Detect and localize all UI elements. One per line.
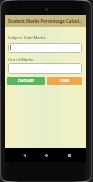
button[interactable]: Recent apps — [64, 150, 75, 161]
button[interactable]: Back — [19, 150, 30, 161]
staticText: CLEAR — [60, 79, 69, 83]
staticText: CALCULATE — [18, 79, 35, 83]
staticText: Student Marks Percentage Calcul... — [8, 18, 83, 24]
button[interactable]: Home — [41, 150, 52, 161]
button[interactable] — [8, 43, 82, 53]
button[interactable]: CLEAR — [47, 77, 82, 85]
staticText: Subject Total Marks: — [8, 35, 47, 41]
button[interactable]: CALCULATE — [7, 77, 45, 85]
staticText: Out of Marks: — [8, 57, 35, 63]
button[interactable] — [8, 63, 82, 74]
